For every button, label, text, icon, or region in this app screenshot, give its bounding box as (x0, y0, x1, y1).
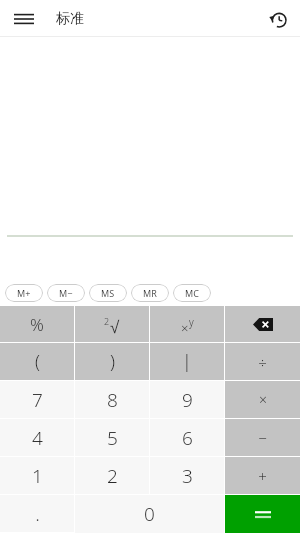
staticText: + (258, 466, 267, 486)
staticText: × (181, 319, 189, 337)
button[interactable]: 2 (75, 306, 149, 342)
staticText: 4 (32, 425, 43, 451)
button[interactable]: M− (47, 284, 85, 302)
staticText: M+ (17, 287, 31, 299)
button[interactable]: 9 (150, 381, 224, 418)
button[interactable]: − (225, 419, 300, 456)
staticText: y (189, 315, 194, 329)
staticText: 5 (107, 425, 118, 451)
button[interactable]: 6 (150, 419, 224, 456)
button[interactable]: × (150, 306, 224, 342)
staticText: 标准 (56, 10, 84, 28)
button[interactable]: 5 (75, 419, 149, 456)
button[interactable]: | (150, 343, 224, 380)
button[interactable]: MC (173, 284, 211, 302)
button[interactable]: ( (0, 343, 74, 380)
button[interactable]: Backspace (225, 306, 300, 342)
staticText: ( (35, 349, 40, 374)
staticText: ) (110, 349, 115, 374)
staticText: 2 (104, 315, 110, 327)
button[interactable]: × (225, 381, 300, 418)
staticText: MR (143, 287, 157, 299)
button[interactable]: History (260, 1, 296, 37)
staticText: . (35, 501, 40, 527)
button[interactable]: . (0, 495, 74, 532)
staticText: − (258, 428, 267, 448)
staticText: | (182, 349, 192, 374)
button[interactable]: % (0, 306, 74, 342)
button[interactable]: ) (75, 343, 149, 380)
staticText: ÷ (258, 352, 267, 372)
button[interactable]: M+ (5, 284, 43, 302)
staticText: √ (110, 318, 120, 337)
button[interactable]: 3 (150, 457, 224, 494)
button[interactable] (225, 495, 300, 533)
button[interactable]: Menu (4, 0, 44, 37)
staticText: 1 (32, 463, 43, 489)
staticText: 2 (107, 463, 118, 489)
staticText: 9 (182, 387, 193, 413)
staticText: 3 (182, 463, 193, 489)
button[interactable]: MR (131, 284, 169, 302)
button[interactable]: 1 (0, 457, 74, 494)
staticText: 0 (144, 501, 155, 527)
staticText: % (30, 313, 44, 336)
staticText: MC (185, 287, 199, 299)
button[interactable]: + (225, 457, 300, 494)
staticText: MS (101, 287, 115, 299)
button[interactable]: 0 (75, 495, 224, 533)
button[interactable]: 4 (0, 419, 74, 456)
button[interactable]: 7 (0, 381, 74, 418)
staticText: 7 (32, 387, 43, 413)
staticText: 6 (182, 425, 193, 451)
button[interactable]: MS (89, 284, 127, 302)
button[interactable]: 8 (75, 381, 149, 418)
button[interactable]: 2 (75, 457, 149, 494)
staticText: 8 (107, 387, 118, 413)
staticText: M− (59, 287, 73, 299)
staticText: × (259, 390, 267, 409)
button[interactable]: ÷ (225, 343, 300, 380)
